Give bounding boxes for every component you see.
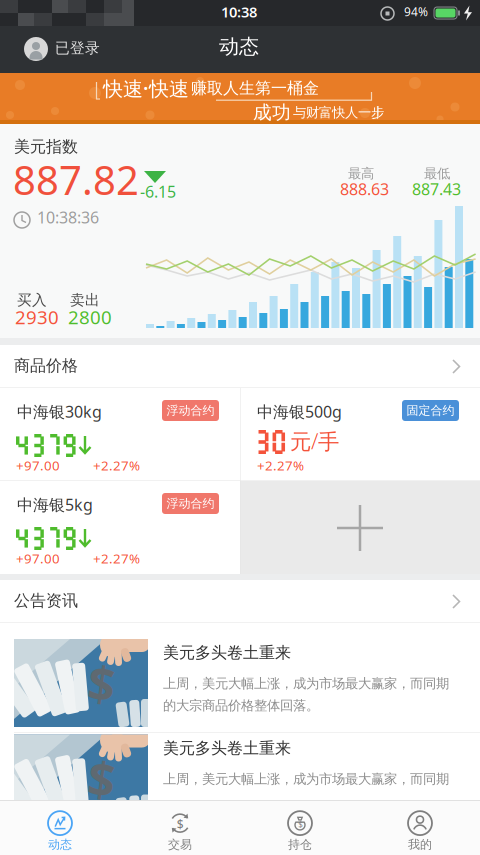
staticText: 美元指数 (14, 137, 78, 156)
staticText: +97.00 (16, 549, 60, 567)
button[interactable]: 中海银500g (240, 388, 480, 481)
staticText: 10:38:36 (37, 207, 99, 228)
staticText: 商品价格 (14, 356, 78, 375)
staticText: 887.43 (412, 178, 461, 200)
staticText: $ (88, 651, 115, 715)
staticText: $ (177, 816, 184, 832)
button[interactable] (240, 481, 480, 574)
staticText: 浮动合约 (166, 403, 214, 418)
staticText: 交易 (168, 837, 192, 852)
button[interactable]: $ (0, 623, 480, 733)
button[interactable]: 中海银5kg (0, 481, 240, 574)
staticText: 快速·快速 (103, 75, 189, 102)
staticText: 动态 (48, 837, 72, 852)
staticText: 中海银30kg (17, 401, 102, 422)
button[interactable]: $ (240, 800, 360, 855)
staticText: 元/手 (290, 427, 339, 455)
staticText: 94% (404, 4, 428, 20)
staticText: 已登录 (55, 39, 100, 57)
button[interactable]: 快速·快速 (0, 73, 480, 124)
staticText: 2800 (68, 305, 112, 329)
staticText: $ (298, 819, 303, 830)
button[interactable]: 公告资讯 (0, 580, 480, 623)
button[interactable]: 我的 (360, 800, 480, 855)
staticText: 固定合约 (406, 403, 454, 418)
staticText: $ (88, 746, 115, 810)
staticText: 最低 (424, 165, 450, 182)
staticText: 887.82 (13, 153, 139, 206)
staticText: 上周，美元大幅上涨，成为市场最大赢家，而同期 (163, 771, 449, 787)
staticText: 美元多头卷土重来 (163, 738, 291, 758)
staticText: +97.00 (16, 456, 60, 474)
staticText: 美元多头卷土重来 (163, 643, 291, 662)
staticText: 2930 (15, 305, 59, 329)
staticText: 中海银5kg (17, 494, 93, 515)
staticText: 的大宗商品价格整体回落。 (163, 697, 319, 714)
staticText: +2.27% (257, 456, 304, 474)
staticText: 赚取人生第一桶金 (191, 78, 319, 98)
staticText: 888.63 (340, 178, 389, 200)
staticText: 我的 (408, 837, 432, 852)
button[interactable]: $ (0, 733, 480, 800)
button[interactable]: 商品价格 (0, 345, 480, 388)
staticText: +2.27% (93, 456, 140, 474)
button[interactable]: 中海银30kg (0, 388, 240, 481)
staticText: -6.15 (140, 181, 176, 202)
staticText: 与财富快人一步 (293, 104, 384, 121)
staticText: 最高 (348, 165, 374, 182)
staticText: +2.27% (93, 549, 140, 567)
staticText: 公告资讯 (14, 591, 78, 610)
staticText: 上周，美元大幅上涨，成为市场最大赢家，而同期 (163, 675, 449, 692)
button[interactable]: $ (120, 800, 240, 855)
staticText: 卖出 (70, 291, 100, 309)
staticText: 买入 (17, 291, 47, 309)
staticText: 持仓 (288, 837, 312, 852)
staticText: 10:38 (221, 2, 257, 21)
staticText: 动态 (219, 34, 259, 59)
button[interactable]: 动态 (0, 800, 120, 855)
staticText: 中海银500g (257, 401, 342, 422)
button[interactable]: 已登录 (0, 26, 130, 73)
staticText: 成功 (253, 101, 291, 124)
staticText: 浮动合约 (166, 496, 214, 511)
